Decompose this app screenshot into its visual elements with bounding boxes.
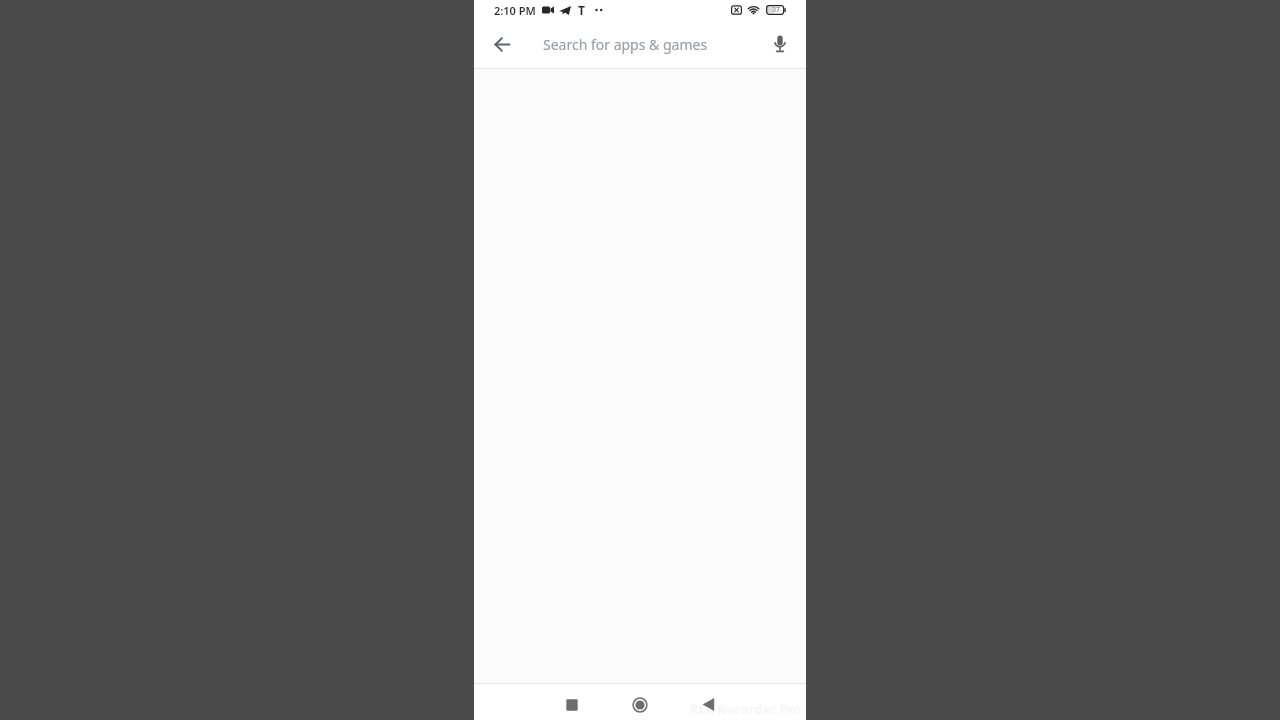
button[interactable] — [478, 20, 526, 68]
staticText: Search for apps & games — [543, 35, 708, 54]
staticText: REC Recorder Pro — [690, 700, 802, 718]
staticText: T — [578, 2, 585, 18]
staticText: 2:10 PM — [494, 3, 536, 18]
staticText: 37 — [772, 5, 781, 15]
button[interactable] — [688, 689, 728, 720]
button[interactable] — [620, 689, 660, 720]
button[interactable] — [552, 689, 592, 720]
button[interactable]: Search for apps & games — [543, 20, 756, 68]
button[interactable] — [756, 20, 804, 68]
